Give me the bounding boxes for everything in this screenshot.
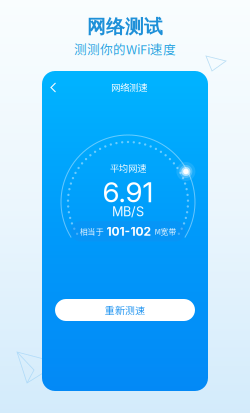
staticText: M宽带 xyxy=(154,225,176,237)
staticText: 平均网速 xyxy=(110,161,146,174)
staticText: 相当于 xyxy=(79,225,103,237)
staticText: 测测你的WiFi速度 xyxy=(74,39,176,58)
staticText: 网络测试 xyxy=(87,15,163,38)
staticText: 6.91 xyxy=(102,175,153,209)
staticText: 重新测速 xyxy=(105,303,145,317)
button[interactable]: 返回 xyxy=(42,75,64,98)
staticText: 101-102 xyxy=(106,224,151,238)
staticText: MB/S xyxy=(112,204,144,219)
staticText: 网络测速 xyxy=(111,80,147,94)
button[interactable]: 重新测速 xyxy=(55,299,195,321)
